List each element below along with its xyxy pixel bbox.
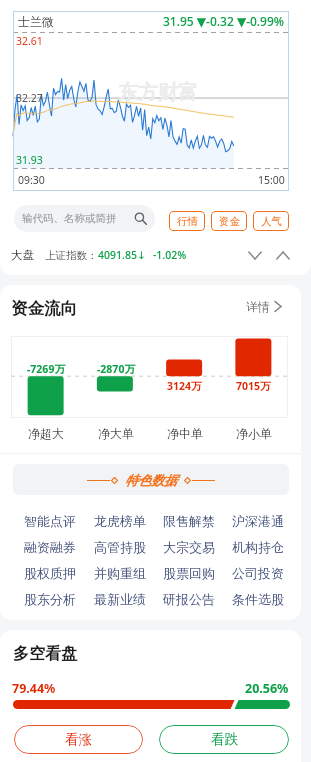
button[interactable]: 看跌	[159, 725, 289, 754]
staticText: 特色数据	[125, 472, 177, 488]
staticText: 4091.85↓	[98, 248, 146, 262]
button[interactable]: 限售解禁	[154, 508, 223, 534]
staticText: 智能点评	[24, 513, 76, 529]
button[interactable]: 股票回购	[154, 560, 223, 586]
button[interactable]: 资金	[211, 211, 247, 231]
button[interactable]: 研报公告	[154, 586, 223, 612]
staticText: 79.44%	[12, 680, 56, 697]
button[interactable]: 收起	[272, 244, 294, 266]
staticText: 资金流向	[11, 298, 77, 319]
staticText: 研报公告	[163, 591, 215, 607]
staticText: 15:00	[258, 173, 285, 187]
staticText: -2870万	[97, 362, 135, 376]
staticText: 净超大	[28, 426, 64, 441]
button[interactable]: 并购重组	[85, 560, 154, 586]
button[interactable]: 融资融券	[15, 534, 85, 560]
staticText: 限售解禁	[163, 513, 215, 529]
staticText: 详情	[246, 299, 270, 314]
staticText: 最新业绩	[94, 591, 146, 607]
staticText: 机构持仓	[232, 539, 284, 555]
staticText: 31.93	[16, 153, 43, 167]
staticText: 股票回购	[163, 565, 215, 581]
staticText: 净小单	[236, 426, 272, 441]
button[interactable]: 行情	[169, 211, 205, 231]
staticText: 7015万	[236, 379, 271, 393]
staticText: 看涨	[65, 731, 92, 748]
staticText: 人气	[261, 215, 282, 228]
button[interactable]: 大宗交易	[154, 534, 223, 560]
staticText: 3124万	[167, 379, 202, 393]
staticText: 输代码、名称或简拼	[22, 212, 117, 225]
staticText: 大宗交易	[163, 539, 215, 555]
staticText: 上证指数：	[45, 249, 98, 262]
button[interactable]: 详情	[246, 299, 282, 314]
staticText: 龙虎榜单	[94, 513, 146, 529]
staticText: 净大单	[98, 426, 134, 441]
button[interactable]: 机构持仓	[223, 534, 292, 560]
staticText: 31.95 ▼-0.32 ▼-0.99%	[163, 13, 285, 29]
staticText: 看跌	[211, 731, 238, 748]
staticText: 股权质押	[24, 565, 76, 581]
staticText: 32.27	[16, 91, 43, 105]
staticText: 大盘	[11, 248, 34, 262]
button[interactable]: 最新业绩	[85, 586, 154, 612]
button[interactable]: 输代码、名称或简拼	[14, 205, 155, 232]
staticText: 高管持股	[94, 539, 146, 555]
staticText: -1.02%	[153, 248, 187, 262]
staticText: 20.56%	[245, 680, 289, 697]
button[interactable]: 股权质押	[15, 560, 85, 586]
staticText: 东方财富	[118, 80, 198, 105]
button[interactable]: 公司投资	[223, 560, 292, 586]
staticText: 并购重组	[94, 565, 146, 581]
staticText: 资金	[219, 215, 240, 228]
button[interactable]: 股东分析	[15, 586, 85, 612]
button[interactable]: 龙虎榜单	[85, 508, 154, 534]
staticText: 09:30	[18, 173, 45, 187]
staticText: 行情	[177, 215, 198, 228]
staticText: 融资融券	[24, 539, 76, 555]
button[interactable]: 展开	[244, 244, 266, 266]
staticText: 股东分析	[24, 591, 76, 607]
button[interactable]: 条件选股	[223, 586, 292, 612]
staticText: 净中单	[167, 426, 203, 441]
staticText: 沪深港通	[232, 513, 284, 529]
staticText: 士兰微	[18, 14, 54, 29]
staticText: 条件选股	[232, 591, 284, 607]
staticText: -7269万	[27, 362, 65, 376]
staticText: 32.61	[16, 34, 43, 48]
button[interactable]: 高管持股	[85, 534, 154, 560]
staticText: 多空看盘	[13, 644, 77, 664]
staticText: 公司投资	[232, 565, 284, 581]
button[interactable]: 看涨	[14, 725, 143, 754]
button[interactable]: 智能点评	[15, 508, 85, 534]
button[interactable]: 沪深港通	[223, 508, 292, 534]
button[interactable]: 人气	[253, 211, 289, 231]
